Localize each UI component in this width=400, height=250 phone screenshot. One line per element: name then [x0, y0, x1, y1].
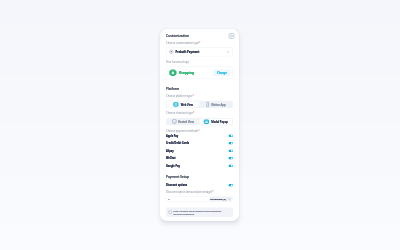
button[interactable]: Discount options: [166, 182, 233, 188]
staticText: Prebuilt Payment: [175, 50, 199, 54]
staticText: Hosted View: [178, 120, 194, 124]
button[interactable]: Toggle: [228, 134, 233, 137]
staticText: Choose payment methods: [166, 129, 198, 133]
staticText: *: [199, 41, 200, 45]
button[interactable]: Settings: [229, 33, 234, 38]
staticText: Credit/Debit Cards: [166, 141, 189, 145]
button[interactable]: Native App: [199, 101, 232, 108]
staticText: Hosted View: [178, 120, 194, 124]
button[interactable]: Prebuilt Payment: [166, 47, 233, 56]
staticText: Modal Popup: [211, 120, 228, 123]
staticText: Native App: [211, 102, 226, 106]
staticText: Percentage (%): [210, 198, 226, 201]
staticText: Choose checkout type: [166, 111, 193, 114]
staticText: Alipay: [166, 149, 174, 152]
button[interactable]: Change: [213, 69, 231, 77]
staticText: Google Pay: [166, 164, 180, 167]
staticText: Payment Setup: [166, 174, 189, 179]
staticText: Prebuilt Payment: [175, 50, 199, 54]
staticText: Web View: [181, 103, 193, 106]
staticText: *: [198, 129, 200, 133]
button[interactable]: Credit/Debit Cards: [166, 140, 233, 146]
staticText: Note: Currency will be based off your pl…: [173, 209, 231, 215]
staticText: Platform: [166, 87, 179, 91]
button[interactable]: Google Pay: [166, 162, 233, 169]
staticText: Note: Currency will be based off your pl…: [173, 209, 231, 215]
staticText: Shopping: [179, 70, 194, 75]
staticText: Apple Pay: [166, 134, 178, 137]
staticText: Customization: [166, 33, 189, 38]
staticText: *: [193, 111, 194, 114]
staticText: WeChat: [166, 156, 176, 160]
button[interactable]: Hosted View: [167, 118, 200, 125]
staticText: Payment Setup: [166, 174, 189, 179]
staticText: Google Pay: [166, 164, 180, 167]
staticText: Change: [217, 71, 227, 75]
button[interactable]: Toggle: [228, 164, 233, 167]
staticText: Change: [217, 71, 227, 75]
staticText: WeChat: [166, 156, 176, 160]
staticText: %: [168, 197, 170, 200]
staticText: Shopping: [179, 70, 194, 75]
staticText: Prebuilt Payment: [175, 50, 199, 54]
staticText: Alipay: [166, 149, 174, 152]
button[interactable]: Web View: [167, 101, 200, 108]
staticText: WeChat: [166, 156, 176, 160]
staticText: %: [168, 197, 170, 200]
button[interactable]: Percentage (%): [209, 197, 233, 202]
button[interactable]: Toggle: [228, 184, 233, 186]
staticText: Credit/Debit Cards: [166, 141, 189, 145]
staticText: Percentage (%): [210, 198, 226, 201]
staticText: Your business logo: [166, 60, 189, 63]
button[interactable]: Apple Pay: [166, 132, 233, 139]
staticText: Discount options: [166, 183, 187, 187]
staticText: Payment Setup: [166, 174, 189, 179]
staticText: Discount options: [166, 183, 187, 187]
button[interactable]: Modal Popup: [199, 118, 232, 125]
staticText: Apple Pay: [166, 134, 178, 137]
staticText: Google Pay: [166, 164, 180, 167]
button[interactable]: Toggle: [228, 142, 233, 144]
staticText: Web View: [181, 103, 193, 106]
staticText: *: [212, 190, 214, 194]
staticText: Alipay: [166, 149, 174, 152]
staticText: Change: [217, 71, 227, 75]
staticText: Choose platform type: [166, 94, 192, 98]
staticText: Shopping: [179, 70, 194, 75]
staticText: Platform: [166, 87, 179, 91]
staticText: Apple Pay: [166, 134, 178, 137]
staticText: Hosted View: [178, 120, 194, 124]
staticText: Discount option (amount/percentage): [166, 190, 212, 194]
staticText: Native App: [211, 102, 226, 106]
staticText: Discount options: [166, 183, 187, 187]
staticText: Platform: [166, 87, 179, 91]
staticText: Native App: [211, 102, 226, 106]
button[interactable]: WeChat: [166, 155, 233, 161]
staticText: %: [168, 197, 170, 200]
staticText: Web View: [181, 103, 193, 106]
button[interactable]: Toggle: [228, 157, 233, 159]
staticText: *: [192, 94, 194, 98]
staticText: Choose customization type: [166, 41, 199, 45]
staticText: Credit/Debit Cards: [166, 141, 189, 145]
staticText: Customization: [166, 33, 189, 38]
staticText: Customization: [166, 33, 189, 38]
staticText: Percentage (%): [210, 198, 226, 201]
button[interactable]: Toggle: [228, 149, 233, 152]
staticText: Note: Currency will be based off your pl…: [173, 209, 231, 215]
staticText: Modal Popup: [211, 120, 228, 123]
button[interactable]: Alipay: [166, 147, 233, 154]
staticText: Modal Popup: [211, 120, 228, 123]
